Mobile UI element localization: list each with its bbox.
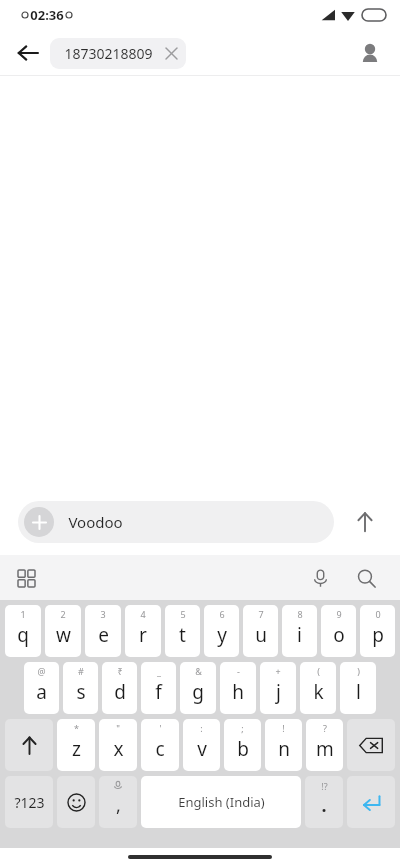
staticText: &: [195, 665, 202, 677]
button[interactable]: Add attachment: [18, 501, 334, 543]
button[interactable]: Back: [6, 31, 50, 75]
button[interactable]: @: [24, 662, 59, 714]
button[interactable]: English (India): [141, 776, 301, 828]
staticText: w: [56, 622, 71, 648]
staticText: 8: [297, 608, 303, 620]
staticText: a: [36, 679, 47, 705]
button[interactable]: 0: [360, 605, 395, 657]
button[interactable]: &: [180, 662, 216, 714]
staticText: t: [179, 622, 186, 648]
button[interactable]: Backspace: [347, 719, 395, 771]
button[interactable]: Shift: [5, 719, 53, 771]
staticText: g: [192, 679, 204, 705]
staticText: ;: [241, 722, 244, 734]
button[interactable]: ?123: [5, 776, 53, 828]
button[interactable]: ₹: [102, 662, 137, 714]
staticText: 9: [336, 608, 342, 620]
staticText: 6: [219, 608, 225, 620]
staticText: :: [200, 722, 203, 734]
staticText: c: [155, 736, 165, 762]
staticText: p: [372, 622, 384, 648]
staticText: ₹: [117, 665, 123, 677]
button[interactable]: ?: [306, 719, 343, 771]
staticText: ): [357, 665, 360, 677]
button[interactable]: 2: [45, 605, 81, 657]
staticText: 7: [258, 608, 264, 620]
staticText: #: [78, 665, 84, 677]
button[interactable]: 6: [204, 605, 239, 657]
button[interactable]: Send: [344, 501, 386, 543]
staticText: English (India): [178, 793, 265, 811]
staticText: ': [159, 722, 162, 734]
button[interactable]: 7: [243, 605, 278, 657]
staticText: j: [276, 679, 281, 705]
button[interactable]: *: [57, 719, 95, 771]
button[interactable]: ): [340, 662, 376, 714]
button[interactable]: Period: [305, 776, 343, 828]
staticText: i: [297, 622, 302, 648]
button[interactable]: 4: [125, 605, 161, 657]
button[interactable]: 9: [321, 605, 356, 657]
staticText: n: [278, 736, 290, 762]
staticText: 5: [180, 608, 186, 620]
staticText: ": [116, 722, 120, 734]
staticText: f: [155, 679, 162, 705]
button[interactable]: 5: [165, 605, 200, 657]
staticText: x: [113, 736, 124, 762]
staticText: @: [37, 665, 46, 677]
staticText: ,: [116, 793, 121, 818]
staticText: 2: [60, 608, 66, 620]
button[interactable]: Add attachment: [24, 507, 54, 537]
staticText: 02:36: [30, 6, 64, 24]
button[interactable]: Toolbar menu: [6, 558, 46, 598]
button[interactable]: ': [141, 719, 179, 771]
staticText: l: [356, 679, 361, 705]
staticText: m: [316, 736, 334, 762]
button[interactable]: Comma: [99, 776, 137, 828]
staticText: 4: [140, 608, 146, 620]
button[interactable]: (: [300, 662, 336, 714]
staticText: _: [157, 665, 161, 677]
button[interactable]: _: [141, 662, 176, 714]
staticText: 3: [100, 608, 106, 620]
staticText: d: [114, 679, 126, 705]
button[interactable]: -: [220, 662, 256, 714]
button[interactable]: !: [265, 719, 302, 771]
button[interactable]: ": [99, 719, 137, 771]
staticText: !: [282, 722, 285, 734]
staticText: o: [333, 622, 345, 648]
staticText: -: [237, 665, 240, 677]
button[interactable]: +: [260, 662, 296, 714]
staticText: Voodoo: [68, 512, 123, 532]
staticText: e: [98, 622, 109, 648]
button[interactable]: 18730218809: [50, 38, 186, 69]
staticText: b: [237, 736, 249, 762]
staticText: z: [72, 736, 81, 762]
staticText: 0: [375, 608, 381, 620]
button[interactable]: Profile: [350, 33, 390, 73]
button[interactable]: Search: [346, 558, 386, 598]
staticText: 18730218809: [64, 44, 153, 63]
staticText: +: [275, 665, 281, 677]
button[interactable]: Emoji: [57, 776, 95, 828]
button[interactable]: 8: [282, 605, 317, 657]
staticText: k: [313, 679, 324, 705]
button[interactable]: :: [183, 719, 220, 771]
button[interactable]: #: [63, 662, 98, 714]
staticText: !?: [321, 780, 328, 792]
staticText: u: [255, 622, 267, 648]
staticText: s: [76, 679, 86, 705]
staticText: (: [317, 665, 320, 677]
button[interactable]: 3: [85, 605, 121, 657]
button[interactable]: ;: [224, 719, 261, 771]
button[interactable]: Enter: [347, 776, 395, 828]
staticText: h: [232, 679, 244, 705]
staticText: q: [17, 622, 29, 648]
staticText: y: [217, 622, 227, 648]
staticText: ?: [323, 722, 327, 734]
staticText: v: [197, 736, 207, 762]
button[interactable]: Voice input: [300, 558, 340, 598]
staticText: r: [139, 622, 147, 648]
staticText: ?123: [14, 793, 45, 812]
button[interactable]: 1: [5, 605, 41, 657]
